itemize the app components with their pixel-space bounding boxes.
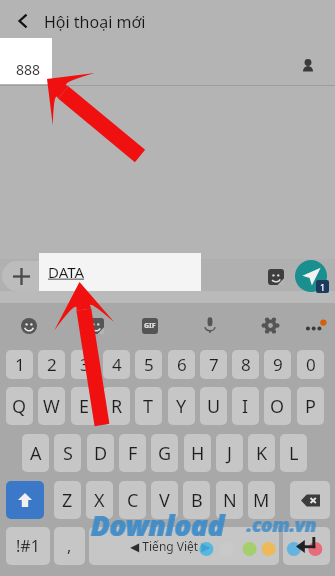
button[interactable]: A: [22, 434, 49, 472]
button[interactable]: K: [248, 434, 275, 472]
staticText: Y: [176, 394, 187, 419]
button[interactable]: U: [200, 387, 227, 425]
button[interactable]: 8: [232, 350, 259, 379]
button[interactable]: Choose contact: [296, 54, 320, 78]
staticText: Download: [90, 506, 224, 544]
button[interactable]: O: [264, 387, 291, 425]
staticText: 7: [209, 353, 219, 376]
button[interactable]: Z: [54, 481, 81, 519]
button[interactable]: F: [119, 434, 146, 472]
button[interactable]: M: [248, 481, 275, 519]
staticText: 1: [320, 281, 326, 293]
staticText: 9: [273, 353, 283, 376]
button[interactable]: DATA: [39, 253, 201, 291]
button[interactable]: Emoji: [16, 313, 42, 339]
button[interactable]: Q: [6, 387, 33, 425]
button[interactable]: !#1: [6, 527, 50, 565]
staticText: K: [256, 441, 268, 466]
button[interactable]: W: [38, 387, 65, 425]
button[interactable]: Stickers: [262, 263, 290, 291]
button[interactable]: 6: [168, 350, 195, 379]
staticText: 5: [144, 353, 154, 376]
button[interactable]: N: [216, 481, 243, 519]
button[interactable]: Space: [89, 527, 279, 565]
staticText: Download: [91, 506, 225, 544]
button[interactable]: P: [297, 387, 324, 425]
button[interactable]: Back: [8, 6, 38, 36]
staticText: B: [191, 488, 203, 513]
button[interactable]: G: [151, 434, 178, 472]
button[interactable]: C: [119, 481, 146, 519]
button[interactable]: 9: [264, 350, 291, 379]
button[interactable]: H: [184, 434, 211, 472]
staticText: N: [223, 488, 237, 513]
button[interactable]: Backspace: [290, 481, 330, 519]
staticText: 6: [177, 353, 187, 376]
staticText: L: [289, 441, 299, 466]
button[interactable]: E: [71, 387, 98, 425]
button[interactable]: 2: [38, 350, 65, 379]
staticText: F: [128, 441, 138, 466]
staticText: Download: [91, 506, 225, 544]
button[interactable]: Enter: [283, 527, 330, 565]
staticText: S: [63, 441, 73, 466]
staticText: T: [143, 394, 154, 419]
staticText: ,: [67, 535, 72, 557]
button[interactable]: D: [87, 434, 114, 472]
button[interactable]: More options: [302, 314, 328, 340]
staticText: .com.vn: [247, 512, 317, 538]
button[interactable]: 1: [6, 350, 33, 379]
staticText: 4: [112, 353, 122, 376]
staticText: I: [242, 394, 249, 419]
button[interactable]: T: [135, 387, 162, 425]
button[interactable]: Y: [168, 387, 195, 425]
staticText: 0: [306, 353, 316, 376]
button[interactable]: I: [232, 387, 259, 425]
button[interactable]: Microphone: [197, 312, 223, 338]
staticText: J: [227, 441, 232, 466]
staticText: H: [191, 441, 205, 466]
button[interactable]: ,: [54, 527, 85, 565]
staticText: .com.vn: [246, 512, 316, 538]
button[interactable]: 7: [200, 350, 227, 379]
staticText: D: [94, 441, 108, 466]
staticText: O: [270, 394, 285, 419]
staticText: 3: [80, 353, 90, 376]
staticText: A: [30, 441, 42, 466]
staticText: G: [158, 441, 172, 466]
button[interactable]: R: [103, 387, 130, 425]
staticText: V: [159, 488, 170, 513]
button[interactable]: 4: [103, 350, 130, 379]
staticText: 1: [15, 353, 25, 376]
staticText: U: [207, 394, 221, 419]
button[interactable]: Send: [295, 260, 327, 292]
button[interactable]: X: [86, 481, 113, 519]
staticText: 8: [241, 353, 251, 376]
button[interactable]: Add attachment: [3, 258, 39, 294]
staticText: Z: [62, 488, 73, 513]
button[interactable]: GIF: [137, 313, 163, 339]
button[interactable]: V: [151, 481, 178, 519]
staticText: P: [305, 394, 316, 419]
button[interactable]: 5: [135, 350, 162, 379]
staticText: R: [111, 394, 123, 419]
staticText: Hội thoại mới: [44, 11, 146, 33]
button[interactable]: Shift: [6, 481, 44, 519]
button[interactable]: 3: [71, 350, 98, 379]
button[interactable]: Sticker: [83, 313, 109, 339]
staticText: Q: [12, 394, 27, 419]
button[interactable]: Settings: [257, 312, 284, 339]
staticText: E: [79, 394, 90, 419]
staticText: 888: [16, 60, 41, 79]
button[interactable]: 0: [297, 350, 324, 379]
button[interactable]: S: [54, 434, 81, 472]
button[interactable]: L: [280, 434, 307, 472]
staticText: M: [253, 488, 270, 513]
staticText: 2: [47, 353, 57, 376]
staticText: DATA: [48, 262, 85, 282]
staticText: X: [94, 488, 105, 513]
staticText: GIF: [144, 321, 156, 331]
button[interactable]: J: [216, 434, 243, 472]
button[interactable]: B: [183, 481, 210, 519]
staticText: ◀ Tiếng Việt ▶: [130, 538, 211, 554]
